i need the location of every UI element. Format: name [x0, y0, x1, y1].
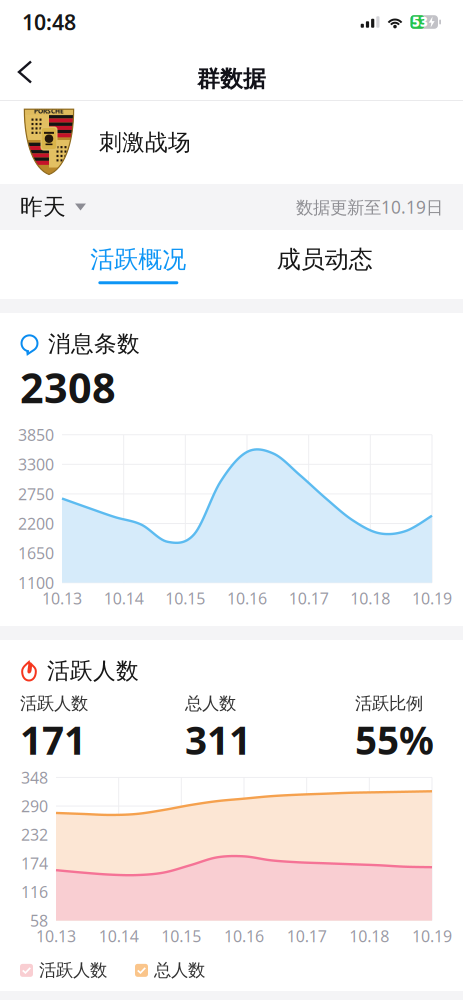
staticText: 174 — [21, 853, 48, 874]
staticText: 348 — [21, 767, 48, 788]
staticText: 116 — [21, 881, 48, 902]
staticText: 10.18 — [349, 925, 389, 947]
staticText: 消息条数 — [48, 330, 140, 358]
staticText: 活跃概况 — [90, 245, 186, 274]
button[interactable]: Back — [0, 49, 45, 94]
staticText: 成员动态 — [277, 245, 373, 274]
staticText: 10:48 — [22, 8, 76, 36]
staticText: 1100 — [18, 572, 54, 593]
staticText: 10.16 — [224, 925, 264, 947]
staticText: PORSCHE — [34, 106, 64, 115]
staticText: 2750 — [18, 483, 54, 504]
staticText: 刺激战场 — [99, 129, 191, 156]
staticText: 10.16 — [227, 588, 267, 609]
staticText: 53 — [412, 13, 428, 30]
staticText: 58 — [30, 910, 48, 931]
staticText: 55% — [355, 714, 434, 765]
staticText: 2308 — [20, 360, 116, 415]
staticText: 群数据 — [197, 65, 266, 93]
staticText: 311 — [185, 714, 251, 765]
staticText: 10.19 — [412, 588, 452, 609]
staticText: 1650 — [18, 542, 54, 564]
staticText: 活跃比例 — [355, 693, 423, 714]
staticText: 10.15 — [161, 925, 201, 947]
staticText: 总人数 — [154, 960, 205, 981]
staticText: 3300 — [18, 454, 54, 475]
staticText: 数据更新至10.19日 — [296, 195, 443, 218]
staticText: 10.19 — [412, 925, 452, 947]
staticText: 10.14 — [104, 588, 144, 609]
button[interactable]: 成员动态 — [277, 231, 373, 298]
staticText: 3850 — [18, 424, 54, 445]
staticText: 10.17 — [289, 588, 329, 609]
button[interactable]: 昨天 — [20, 183, 86, 231]
staticText: 10.14 — [99, 925, 139, 947]
button[interactable]: 活跃概况 — [90, 231, 186, 298]
staticText: 活跃人数 — [20, 693, 88, 714]
staticText: 10.13 — [36, 925, 76, 947]
staticText: 232 — [21, 824, 48, 845]
staticText: 活跃人数 — [47, 657, 139, 685]
staticText: 171 — [20, 714, 86, 765]
button[interactable]: 活跃人数 — [20, 960, 107, 981]
button[interactable]: 总人数 — [135, 960, 205, 981]
staticText: 昨天 — [20, 193, 66, 221]
staticText: 290 — [21, 795, 48, 817]
staticText: 10.15 — [165, 588, 205, 609]
staticText: 10.13 — [42, 588, 82, 609]
staticText: 总人数 — [185, 693, 236, 714]
staticText: 2200 — [18, 513, 54, 534]
staticText: 10.18 — [350, 588, 390, 609]
staticText: 活跃人数 — [39, 960, 107, 981]
staticText: 10.17 — [287, 925, 327, 947]
